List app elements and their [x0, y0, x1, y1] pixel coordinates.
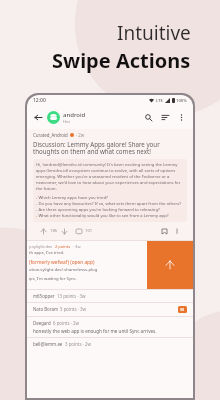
staticText: m65opper	[33, 293, 55, 299]
staticText: Discussion: Lemmy Apps galore! Share you…	[33, 140, 187, 156]
staticText: Hot	[63, 119, 70, 124]
button[interactable]: Sort	[159, 111, 172, 124]
staticText: bell@lemm.ee	[33, 341, 63, 347]
button[interactable]: More options	[175, 111, 188, 124]
staticText: Swipe Actions	[52, 47, 191, 74]
staticText: LTE	[156, 98, 163, 104]
button[interactable]: bell@lemm.ee	[27, 337, 193, 350]
button[interactable]: Save	[159, 226, 169, 236]
staticText: honestly the web app is enough for me un…	[33, 328, 157, 334]
staticText: 100%	[176, 98, 187, 104]
button[interactable]: Downvote	[60, 227, 69, 236]
staticText: 13 points · 3w	[57, 293, 86, 299]
staticText: Hi, !android@lemdro.id community! It's b…	[36, 162, 184, 192]
staticText: 5 points · 3w	[60, 306, 86, 312]
staticText: 101	[85, 228, 93, 234]
staticText: th apps, I've tried.	[29, 250, 65, 256]
button[interactable]: Upvote	[147, 241, 193, 289]
button[interactable]: Search	[142, 111, 155, 124]
button[interactable]: Nato Boram	[27, 302, 193, 316]
staticText: · 2w	[76, 132, 85, 138]
staticText: 186	[50, 228, 58, 234]
staticText: y.sylight.dev	[29, 244, 53, 249]
staticText: - Which Lemmy apps have you tried? - Do …	[36, 195, 182, 219]
staticText: 98	[180, 307, 185, 312]
staticText: 6 points · 2w	[53, 320, 79, 326]
staticText: (formerly wefwaf) (open app)	[29, 259, 95, 266]
staticText: 2 points	[55, 244, 71, 249]
staticText: 12:00	[33, 97, 46, 104]
button[interactable]: m65opper	[27, 289, 193, 302]
button[interactable]: Comments	[74, 227, 83, 236]
staticText: 3 points · 2w	[65, 341, 91, 347]
staticText: otion.sylight.dev/-shamelesss-plug	[29, 267, 98, 273]
staticText: · 3w	[73, 244, 81, 249]
button[interactable]: Deegard	[27, 316, 193, 337]
staticText: Deegard	[33, 320, 51, 326]
staticText: Nato Boram	[33, 306, 58, 312]
staticText: Curated_Android	[33, 132, 68, 138]
staticText: ips, I'm waiting for Sync.	[29, 276, 77, 282]
button[interactable]: More	[172, 226, 182, 236]
button[interactable]: Back	[32, 111, 45, 124]
staticText: Intuitive	[117, 20, 191, 46]
staticText: android	[63, 111, 86, 119]
button[interactable]: Upvote	[39, 227, 48, 236]
